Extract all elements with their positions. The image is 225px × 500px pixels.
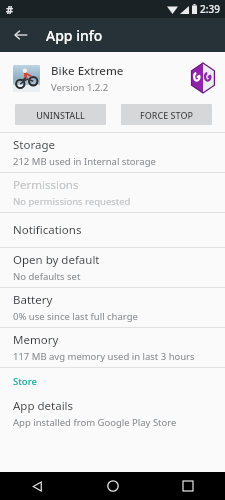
staticText: 212 MB used in Internal storage — [13, 155, 156, 168]
staticText: UNINSTALL — [36, 109, 85, 121]
button[interactable]: FORCE STOP — [121, 104, 212, 125]
button[interactable]: Memory — [0, 328, 225, 367]
staticText: Notifications — [13, 222, 82, 238]
staticText: 117 MB avg memory used in last 3 hours — [13, 350, 195, 363]
staticText: 2:39 — [200, 2, 220, 16]
staticText: App installed from Google Play Store — [13, 416, 177, 429]
button[interactable]: App details — [0, 394, 225, 433]
button[interactable]: Back — [0, 472, 75, 500]
button[interactable]: Navigate up — [8, 22, 34, 48]
staticText: App details — [13, 398, 74, 414]
staticText: FORCE STOP — [140, 109, 193, 121]
staticText: Store — [13, 375, 37, 388]
button[interactable]: Notifications — [0, 213, 225, 247]
staticText: No defaults set — [13, 270, 81, 283]
button[interactable]: Open by default — [0, 248, 225, 287]
staticText: Bike Extreme — [51, 63, 124, 79]
button[interactable]: Recent apps — [150, 472, 225, 500]
button[interactable]: Home — [75, 472, 150, 500]
button[interactable]: Battery — [0, 288, 225, 327]
staticText: Storage — [13, 137, 55, 153]
button[interactable]: Storage — [0, 133, 225, 172]
staticText: Battery — [13, 292, 53, 308]
staticText: No permissions requested — [13, 195, 131, 208]
staticText: App info — [46, 26, 103, 45]
button[interactable]: Permissions — [0, 173, 225, 212]
staticText: Open by default — [13, 252, 100, 268]
button[interactable]: UNINSTALL — [15, 104, 106, 125]
staticText: 0% use since last full charge — [13, 310, 138, 323]
staticText: Version 1.2.2 — [51, 81, 109, 94]
staticText: # — [6, 2, 14, 17]
staticText: Memory — [13, 332, 59, 348]
staticText: Permissions — [13, 177, 79, 193]
button[interactable]: Game Guardian — [188, 61, 218, 95]
